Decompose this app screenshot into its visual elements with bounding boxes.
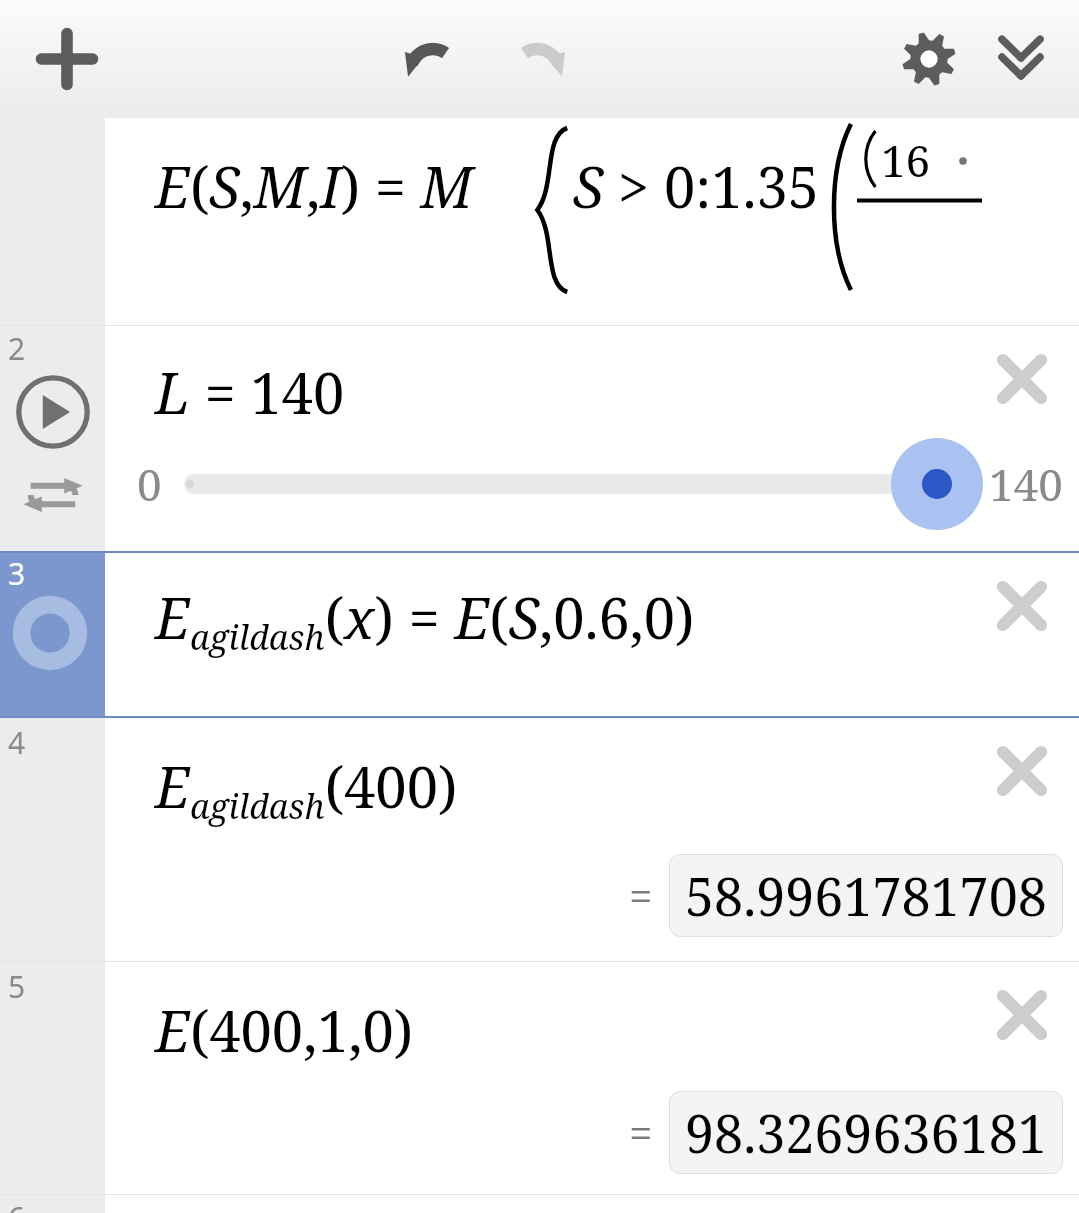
button[interactable]: Collapse panel xyxy=(975,13,1067,105)
staticText: L = 140 xyxy=(155,354,345,430)
button[interactable]: 58.9961781708 xyxy=(669,854,1063,937)
staticText: 98.3269636181 xyxy=(685,1097,1047,1168)
button[interactable]: Play animation xyxy=(9,368,97,456)
staticText: 4 xyxy=(8,722,26,763)
staticText: Eagildash(x) = E(S,0.6,0) xyxy=(155,579,695,660)
staticText: 6 xyxy=(8,1197,26,1213)
staticText: 0 xyxy=(137,454,162,514)
staticText: 58.9961781708 xyxy=(685,860,1047,931)
button[interactable]: Redo xyxy=(492,10,590,108)
button[interactable]: 3 xyxy=(0,553,105,716)
button[interactable]: Settings xyxy=(883,13,975,105)
button[interactable]: 98.3269636181 xyxy=(669,1091,1063,1174)
button[interactable]: Loop mode xyxy=(16,466,90,524)
button[interactable]: Delete expression xyxy=(975,332,1069,426)
staticText: = xyxy=(629,1104,653,1161)
button[interactable]: Undo xyxy=(380,10,478,108)
staticText: S > 0:1.35 xyxy=(573,148,820,224)
button[interactable]: 5 xyxy=(0,962,105,1194)
staticText: 140 xyxy=(989,454,1063,514)
button[interactable]: Slider for L xyxy=(184,454,983,514)
staticText: = xyxy=(629,867,653,924)
button[interactable]: Delete expression xyxy=(975,724,1069,818)
staticText: E(S,M,I) = M xyxy=(155,148,474,224)
staticText: Eagildash(400) xyxy=(155,748,458,829)
staticText: 2 xyxy=(8,328,26,369)
staticText: 16 xyxy=(881,130,931,190)
button[interactable]: Add expression xyxy=(20,12,114,106)
button[interactable]: Delete expression xyxy=(975,968,1069,1062)
button[interactable]: 2 xyxy=(0,326,105,551)
button[interactable]: 4 xyxy=(0,718,105,961)
staticText: E(400,1,0) xyxy=(155,992,414,1068)
button[interactable]: Delete expression xyxy=(975,559,1069,653)
staticText: 5 xyxy=(8,966,26,1007)
staticText: 3 xyxy=(8,553,26,594)
button[interactable]: 6 xyxy=(0,1195,105,1213)
button[interactable]: Toggle graph visibility xyxy=(8,591,92,675)
